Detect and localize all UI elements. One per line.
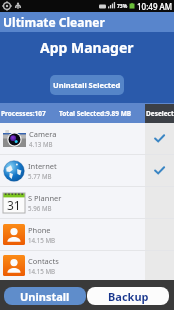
staticText: Internet [28,161,57,171]
staticText: S Planner [28,193,62,203]
staticText: 14.15 MB [28,236,56,244]
staticText: 31 [7,197,21,213]
staticText: Ultimate Cleaner [3,14,105,30]
staticText: Total Selected:9.89 MB [59,109,132,118]
staticText: Contacts [28,256,59,266]
staticText: 4.13 MB [29,140,53,148]
staticText: 5.77 MB [28,172,52,180]
staticText: Camera [29,129,57,139]
staticText: Backup [108,289,149,304]
staticText: 14.15 MB [28,267,56,275]
button[interactable]: 31 [0,187,174,218]
button[interactable]: Backup [87,287,169,305]
staticText: Phone [28,225,51,235]
button[interactable]: Contacts [0,251,174,280]
staticText: 10:49 AM [137,1,173,12]
button[interactable]: Internet [0,155,174,186]
staticText: Processes:107 [1,109,46,118]
button[interactable]: Uninstall Selected [50,75,124,95]
button[interactable]: Phone [0,219,174,250]
staticText: Uninstall [20,289,70,304]
button[interactable]: Camera [0,123,174,154]
staticText: Deselect [146,109,174,118]
staticText: App Manager [40,38,134,57]
staticText: 73% [117,3,128,10]
button[interactable]: Deselect [145,104,174,123]
button[interactable]: Uninstall [4,287,86,305]
staticText: Uninstall Selected [53,80,121,90]
staticText: 5.96 MB [28,204,52,212]
